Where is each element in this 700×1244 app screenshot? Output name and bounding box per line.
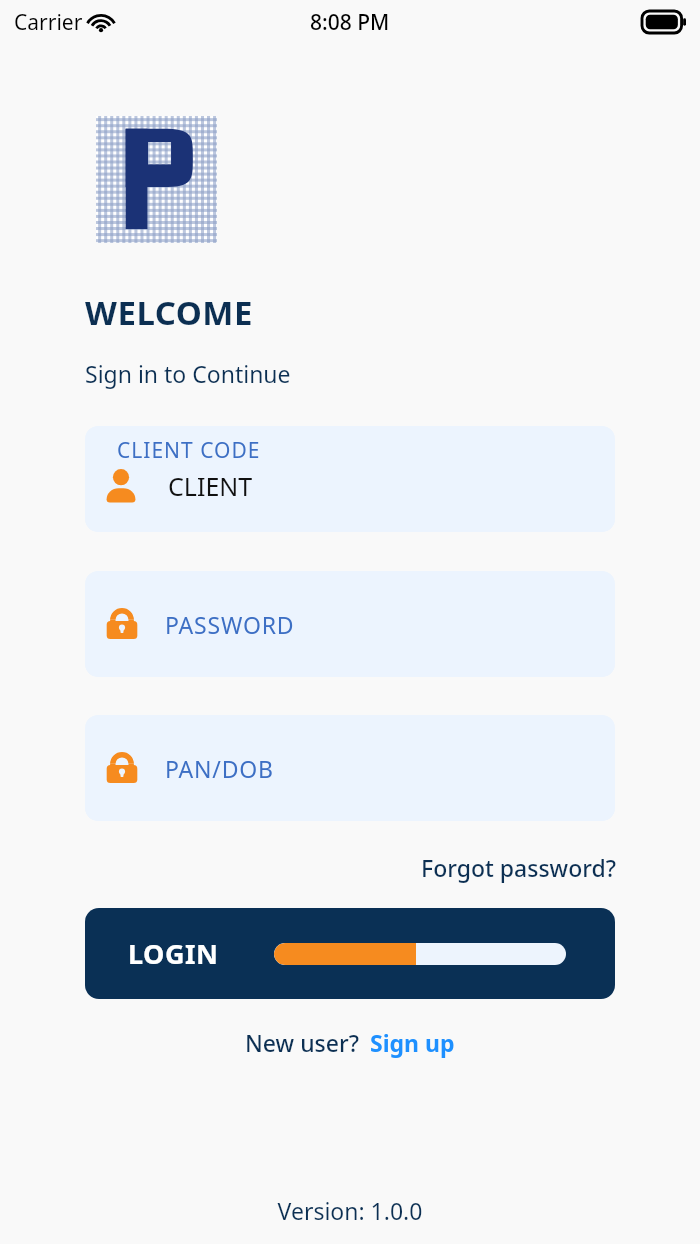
staticText: Carrier xyxy=(14,8,83,37)
staticText: Sign in to Continue xyxy=(85,358,291,389)
button[interactable]: LOGIN xyxy=(85,908,615,999)
staticText: WELCOME xyxy=(85,290,253,335)
button[interactable]: Sign up xyxy=(370,1027,455,1058)
staticText: 8:08 PM xyxy=(310,8,390,37)
button[interactable]: Client code field xyxy=(85,426,615,532)
staticText: PASSWORD xyxy=(165,609,295,640)
button[interactable]: PAN or date of birth field xyxy=(85,715,615,821)
staticText: Sign up xyxy=(370,1027,455,1058)
staticText: LOGIN xyxy=(128,935,219,972)
button[interactable]: Forgot password? xyxy=(417,848,620,887)
button[interactable]: Password field xyxy=(85,571,615,677)
staticText: CLIENT xyxy=(168,469,253,503)
staticText: Forgot password? xyxy=(421,852,616,883)
staticText: New user? xyxy=(245,1027,359,1058)
staticText: Version: 1.0.0 xyxy=(0,1195,700,1226)
staticText: CLIENT CODE xyxy=(117,436,261,465)
staticText: PAN/DOB xyxy=(165,753,274,784)
